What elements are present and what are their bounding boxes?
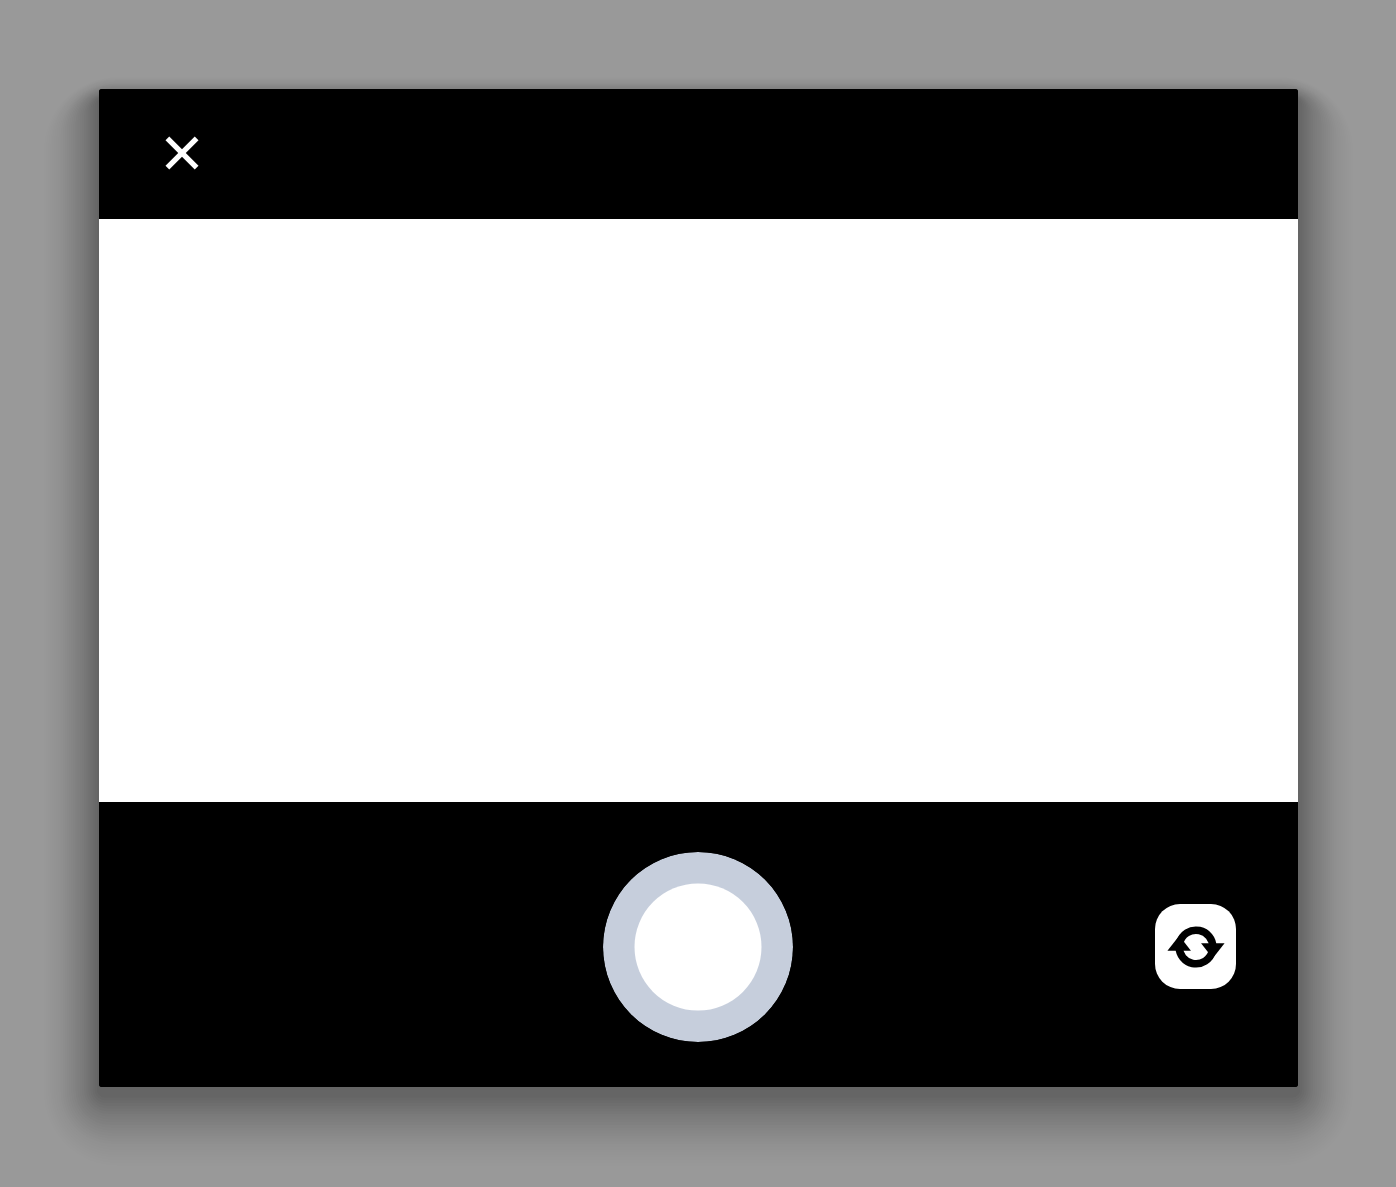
button[interactable]: Switch camera [1155, 904, 1236, 989]
button[interactable]: Close [143, 114, 221, 192]
button[interactable]: Take photo [603, 852, 793, 1042]
